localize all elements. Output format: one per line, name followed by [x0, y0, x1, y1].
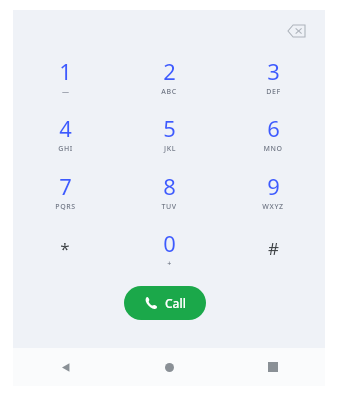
staticText: 9 — [267, 171, 280, 201]
button[interactable]: Call — [124, 286, 206, 320]
button[interactable]: 1 — [13, 52, 117, 100]
button[interactable]: 8 — [117, 167, 221, 215]
staticText: * — [60, 237, 70, 260]
staticText: 8 — [163, 171, 176, 201]
button[interactable]: 4 — [13, 109, 117, 157]
staticText: Call — [165, 295, 186, 311]
button[interactable]: * — [13, 224, 117, 272]
staticText: — — [62, 87, 69, 97]
staticText: 7 — [59, 171, 72, 201]
staticText: JKL — [164, 144, 176, 154]
button[interactable]: 9 — [221, 167, 325, 215]
staticText: 2 — [163, 56, 176, 86]
staticText: MNO — [263, 144, 283, 154]
button[interactable]: 0 — [117, 224, 221, 272]
staticText: 5 — [163, 113, 176, 143]
button[interactable]: 6 — [221, 109, 325, 157]
staticText: TUV — [161, 202, 177, 212]
staticText: GHI — [58, 144, 73, 154]
staticText: WXYZ — [262, 202, 284, 212]
staticText: DEF — [266, 87, 281, 97]
staticText: PQRS — [55, 202, 76, 212]
staticText: 0 — [163, 228, 176, 258]
button[interactable]: Back — [13, 348, 117, 386]
button[interactable]: 3 — [221, 52, 325, 100]
button[interactable]: 7 — [13, 167, 117, 215]
button[interactable]: Recent apps — [221, 348, 325, 386]
staticText: ABC — [161, 87, 177, 97]
staticText: 1 — [59, 56, 72, 86]
staticText: 6 — [267, 113, 280, 143]
staticText: + — [167, 259, 172, 269]
button[interactable]: Backspace — [281, 16, 311, 46]
staticText: # — [268, 237, 279, 260]
button[interactable]: # — [221, 224, 325, 272]
button[interactable]: Home — [117, 348, 221, 386]
button[interactable]: 2 — [117, 52, 221, 100]
button[interactable]: 5 — [117, 109, 221, 157]
staticText: 3 — [267, 56, 280, 86]
staticText: 4 — [59, 113, 72, 143]
